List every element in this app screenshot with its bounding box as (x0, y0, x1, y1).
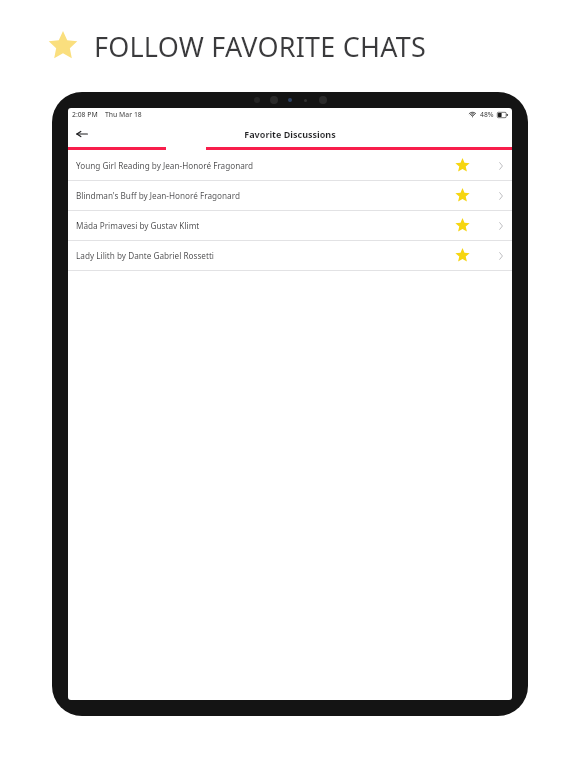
staticText: 2:08 PM (72, 110, 98, 119)
button[interactable]: Blindman's Buff by Jean-Honoré Fragonard (68, 181, 512, 210)
staticText: FOLLOW FAVORITE CHATS (94, 28, 426, 65)
button[interactable]: Lady Lilith by Dante Gabriel Rossetti (68, 241, 512, 270)
staticText: Blindman's Buff by Jean-Honoré Fragonard (76, 190, 240, 201)
button[interactable]: Back (71, 123, 93, 145)
staticText: 48% (480, 110, 494, 119)
staticText: Thu Mar 18 (105, 110, 142, 119)
button[interactable]: Mäda Primavesi by Gustav Klimt (68, 211, 512, 240)
button[interactable]: Young Girl Reading by Jean-Honoré Fragon… (68, 151, 512, 180)
staticText: Young Girl Reading by Jean-Honoré Fragon… (76, 160, 254, 171)
staticText: Favorite Discussions (244, 128, 336, 140)
staticText: Mäda Primavesi by Gustav Klimt (76, 220, 200, 231)
staticText: Lady Lilith by Dante Gabriel Rossetti (76, 250, 214, 261)
